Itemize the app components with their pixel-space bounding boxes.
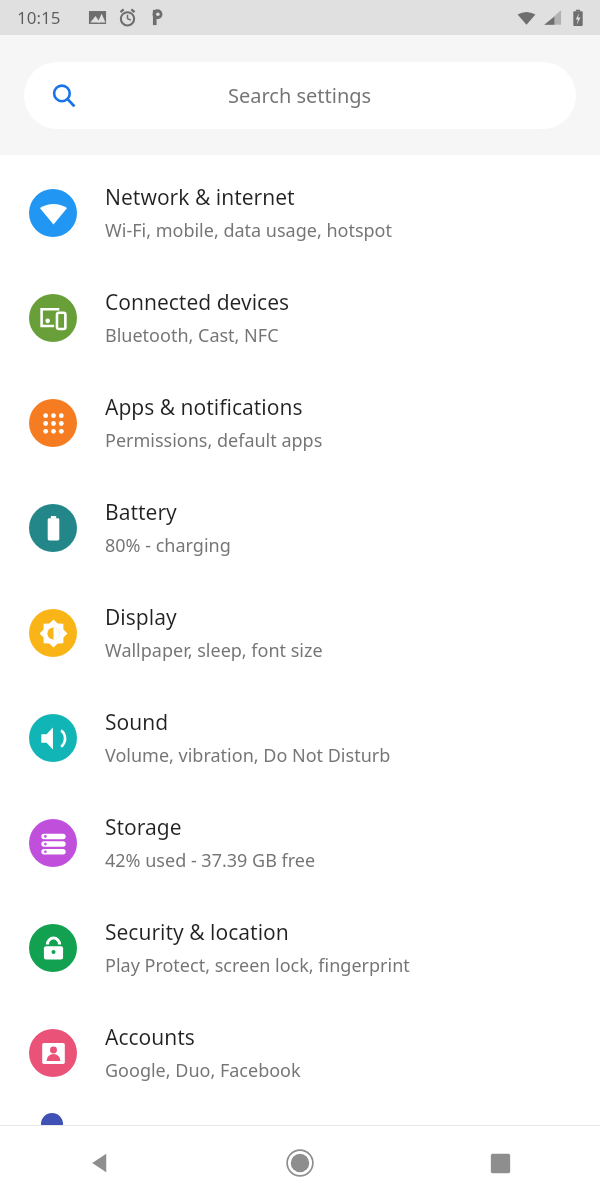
staticText: Display bbox=[105, 603, 177, 632]
button[interactable]: Back bbox=[0, 1126, 200, 1200]
button[interactable]: Network & internet bbox=[0, 160, 600, 265]
staticText: 10:15 bbox=[17, 6, 61, 29]
staticText: Connected devices bbox=[105, 288, 290, 317]
button[interactable]: Accounts bbox=[0, 1000, 600, 1105]
staticText: Accounts bbox=[105, 1023, 195, 1052]
button[interactable]: Connected devices bbox=[0, 265, 600, 370]
staticText: Network & internet bbox=[105, 183, 295, 212]
staticText: Google, Duo, Facebook bbox=[105, 1058, 301, 1083]
staticText: Permissions, default apps bbox=[105, 428, 323, 453]
staticText: 80% - charging bbox=[105, 533, 231, 558]
button[interactable]: Apps & notifications bbox=[0, 370, 600, 475]
staticText: Security & location bbox=[105, 918, 289, 947]
button[interactable]: Sound bbox=[0, 685, 600, 790]
button[interactable]: Security & location bbox=[0, 895, 600, 1000]
button[interactable]: Storage bbox=[0, 790, 600, 895]
button[interactable]: Display bbox=[0, 580, 600, 685]
staticText: Wi-Fi, mobile, data usage, hotspot bbox=[105, 218, 393, 243]
staticText: Battery bbox=[105, 498, 177, 527]
staticText: Wallpaper, sleep, font size bbox=[105, 638, 323, 663]
staticText: Apps & notifications bbox=[105, 393, 303, 422]
staticText: Volume, vibration, Do Not Disturb bbox=[105, 743, 391, 768]
button[interactable]: Search settings bbox=[24, 62, 576, 129]
staticText: 42% used - 37.39 GB free bbox=[105, 848, 316, 873]
staticText: Sound bbox=[105, 708, 169, 737]
staticText: Search settings bbox=[228, 82, 372, 109]
button[interactable]: Battery bbox=[0, 475, 600, 580]
staticText: Storage bbox=[105, 813, 182, 842]
button[interactable]: Recent apps bbox=[400, 1126, 600, 1200]
staticText: Bluetooth, Cast, NFC bbox=[105, 323, 279, 348]
button[interactable]: Home bbox=[200, 1126, 400, 1200]
staticText: Play Protect, screen lock, fingerprint bbox=[105, 953, 410, 978]
